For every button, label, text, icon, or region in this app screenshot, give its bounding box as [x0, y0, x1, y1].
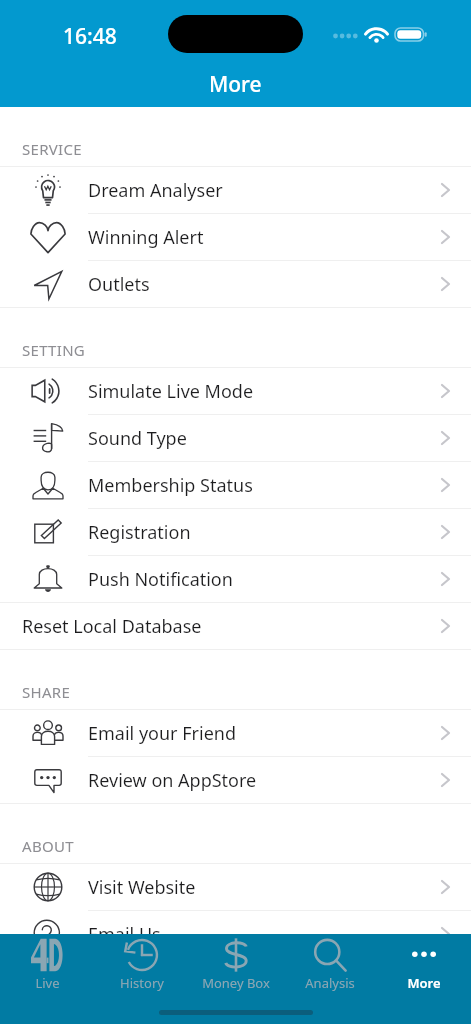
staticText: Analysis [305, 974, 355, 992]
button[interactable]: Email your Friend [0, 710, 471, 756]
button[interactable]: Dream Analyser [0, 167, 471, 213]
button[interactable]: Registration [0, 509, 471, 555]
staticText: 16:48 [63, 22, 117, 51]
button[interactable]: Outlets [0, 261, 471, 307]
button[interactable]: Winning Alert [0, 214, 471, 260]
button[interactable]: History [95, 934, 189, 996]
button[interactable]: Analysis [283, 934, 377, 996]
staticText: Live [35, 974, 60, 992]
staticText: Reset Local Database [22, 614, 202, 639]
staticText: Registration [88, 520, 191, 545]
staticText: Review on AppStore [88, 768, 257, 793]
staticText: More [407, 974, 441, 992]
button[interactable]: Money Box [189, 934, 283, 996]
staticText: Simulate Live Mode [88, 379, 254, 404]
button[interactable]: Review on AppStore [0, 757, 471, 803]
staticText: Email Us [88, 922, 161, 947]
staticText: More [209, 70, 262, 99]
staticText: Membership Status [88, 473, 253, 498]
staticText: Push Notification [88, 567, 233, 592]
button[interactable]: Simulate Live Mode [0, 368, 471, 414]
staticText: Visit Website [88, 875, 196, 900]
button[interactable]: Membership Status [0, 462, 471, 508]
staticText: SHARE [22, 682, 71, 702]
staticText: ABOUT [22, 836, 74, 856]
button[interactable]: Sound Type [0, 415, 471, 461]
staticText: Outlets [88, 272, 150, 297]
staticText: Winning Alert [88, 225, 204, 250]
staticText: SETTING [22, 340, 86, 360]
button[interactable]: Push Notification [0, 556, 471, 602]
button[interactable]: Visit Website [0, 864, 471, 910]
staticText: History [120, 974, 164, 992]
staticText: Money Box [202, 974, 270, 992]
button[interactable]: More [377, 934, 471, 996]
button[interactable]: Live [0, 934, 95, 996]
staticText: Email your Friend [88, 721, 236, 746]
staticText: Dream Analyser [88, 178, 223, 203]
staticText: SERVICE [22, 139, 82, 159]
button[interactable]: Reset Local Database [0, 603, 471, 649]
staticText: Sound Type [88, 426, 187, 451]
button[interactable]: Email Us [0, 911, 471, 957]
